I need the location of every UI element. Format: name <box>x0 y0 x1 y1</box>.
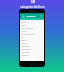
staticText: Electronics <box>21 21 29 23</box>
staticText: Sports & Outdoors <box>21 33 35 35</box>
staticText: Stationery <box>21 54 29 56</box>
staticText: Toys <box>21 36 25 38</box>
staticText: Beauty <box>21 39 27 41</box>
button[interactable]: Electronics <box>20 20 44 23</box>
staticText: categories list form <box>20 5 45 9</box>
button[interactable]: Stationery <box>20 53 44 56</box>
button[interactable]: Books <box>20 23 44 26</box>
button[interactable]: Home <box>31 63 34 66</box>
staticText: UI <box>31 0 35 4</box>
button[interactable]: Fashion <box>20 29 44 32</box>
staticText: Fashion <box>21 30 27 32</box>
button[interactable]: Garden Tools <box>20 47 44 50</box>
staticText: Books <box>21 24 26 26</box>
staticText: Home & Kitchen <box>21 27 33 29</box>
button[interactable]: Beauty <box>20 38 44 41</box>
button[interactable]: Sports & Outdoors <box>20 32 44 35</box>
button[interactable]: Automotive <box>20 44 44 47</box>
button[interactable]: Menu <box>22 15 25 18</box>
button[interactable]: Pet Supplies <box>20 50 44 53</box>
staticText: Garden Tools <box>21 48 31 50</box>
staticText: Categories <box>26 15 36 18</box>
staticText: Pet Supplies <box>21 51 30 53</box>
button[interactable]: Home & Kitchen <box>20 26 44 29</box>
button[interactable]: Search <box>40 15 42 17</box>
staticText: Grocery <box>21 42 27 44</box>
button[interactable]: Grocery <box>20 41 44 44</box>
button[interactable]: Menu <box>20 14 44 18</box>
button[interactable]: Toys <box>20 35 44 38</box>
staticText: Automotive <box>21 45 30 47</box>
